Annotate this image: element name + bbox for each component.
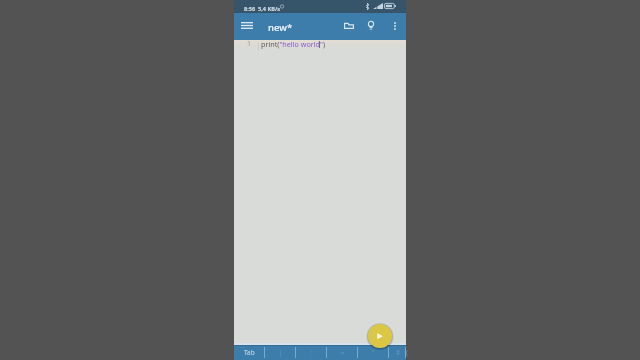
button[interactable]: # [389,346,406,360]
staticText: print("hello world") [261,39,326,49]
staticText: 5,4 KB/s [258,5,281,13]
staticText: : [311,348,313,356]
button[interactable]: Open file [339,15,359,35]
button[interactable]: | [265,346,296,360]
button[interactable]: = [327,346,358,360]
button[interactable]: Tab [234,346,265,360]
button[interactable]: More options [385,16,404,36]
staticText: new* [268,21,293,34]
staticText: Tab [244,348,255,357]
staticText: 1 [247,39,252,49]
button[interactable]: : [296,346,327,360]
button[interactable]: Navigation menu [235,15,259,35]
button[interactable]: " [358,346,389,360]
staticText: | [279,348,283,356]
staticText: 8:56 [244,5,256,13]
staticText: " [372,348,375,356]
button[interactable]: Hints [361,15,381,35]
staticText: = [341,348,345,356]
staticText: # [396,348,400,356]
button[interactable]: Run [366,322,394,350]
